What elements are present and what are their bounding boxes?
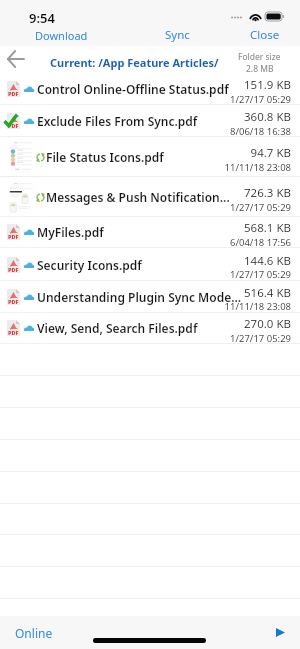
staticText: 8/06/18 16:38	[191, 125, 291, 138]
staticText: 360.8 KB	[191, 109, 291, 125]
staticText: 6/04/18 17:56	[191, 236, 291, 249]
staticText: Exclude Files From Sync.pdf	[37, 113, 247, 129]
staticText: 1/27/17 05:29	[191, 93, 291, 106]
staticText: PDF	[8, 90, 19, 97]
staticText: Folder size	[238, 51, 281, 63]
staticText: 568.1 KB	[191, 220, 291, 236]
staticText: File Status Icons.pdf	[46, 149, 246, 165]
staticText: PDF	[8, 329, 19, 336]
button[interactable]: Close	[250, 27, 280, 43]
staticText: PDF	[8, 233, 19, 240]
button[interactable]: Go	[270, 622, 290, 642]
staticText: 1/27/17 05:29	[191, 268, 291, 281]
staticText: 726.3 KB	[191, 185, 291, 201]
staticText: Messages & Push Notification...	[46, 189, 246, 205]
staticText: 94.7 KB	[191, 145, 291, 161]
staticText: MyFiles.pdf	[37, 224, 247, 240]
button[interactable]: Online	[15, 625, 53, 641]
staticText: PDF	[8, 122, 19, 129]
staticText: 1/27/17 05:29	[191, 201, 291, 214]
staticText: 144.6 KB	[191, 253, 291, 269]
staticText: 516.4 KB	[191, 285, 291, 301]
staticText: 151.9 KB	[191, 77, 291, 93]
button[interactable]: Download	[35, 28, 88, 43]
staticText: View, Send, Search Files.pdf	[37, 320, 247, 336]
staticText: 1/27/17 05:29	[191, 332, 291, 345]
button[interactable]: Back	[3, 47, 27, 71]
staticText: Close	[250, 27, 280, 43]
staticText: Online	[15, 625, 53, 641]
staticText: 11/11/18 23:08	[191, 300, 291, 313]
staticText: 11/11/18 23:08	[191, 161, 291, 174]
staticText: Sync	[165, 27, 190, 43]
staticText: Control Online-Offline Status.pdf	[37, 81, 247, 97]
staticText: Understanding Plugin Sync Mode...	[37, 289, 247, 305]
staticText: Download	[35, 28, 88, 43]
button[interactable]: Sync	[165, 27, 190, 43]
staticText: 270.0 KB	[191, 316, 291, 332]
staticText: 2.8 MB	[246, 63, 274, 75]
staticText: Current: /App Feature Articles/	[50, 55, 219, 70]
staticText: 9:54	[29, 9, 55, 27]
staticText: Security Icons.pdf	[37, 257, 247, 273]
staticText: PDF	[8, 266, 19, 273]
staticText: PDF	[8, 298, 19, 305]
